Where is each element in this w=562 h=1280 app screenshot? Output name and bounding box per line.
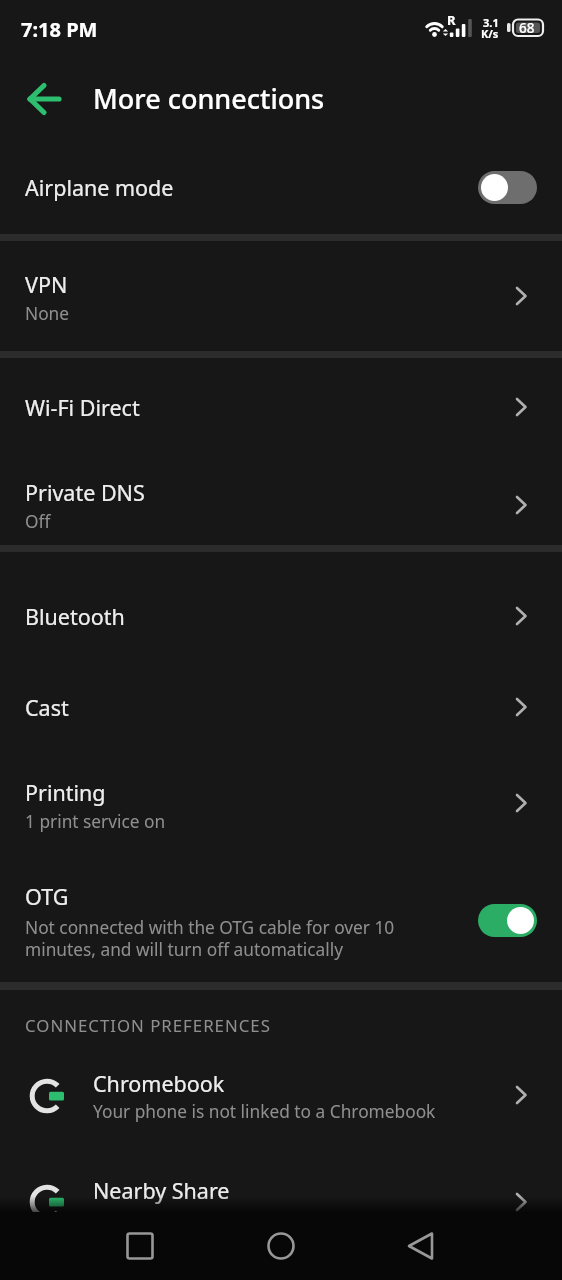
staticText: Your phone is not linked to a Chromebook bbox=[93, 1100, 436, 1124]
button[interactable]: OTG bbox=[0, 862, 562, 972]
staticText: VPN bbox=[25, 270, 68, 299]
button[interactable]: Private DNS bbox=[0, 460, 562, 545]
staticText: Printing bbox=[25, 778, 106, 807]
staticText: Private DNS bbox=[25, 478, 145, 507]
button[interactable]: Bluetooth bbox=[0, 571, 562, 661]
staticText: K/s bbox=[481, 26, 499, 41]
staticText: R bbox=[447, 11, 456, 29]
staticText: Chromebook bbox=[93, 1069, 225, 1098]
button[interactable] bbox=[253, 1212, 309, 1280]
button[interactable] bbox=[478, 904, 537, 937]
button[interactable]: VPN bbox=[0, 251, 562, 341]
staticText: Bluetooth bbox=[25, 602, 125, 631]
staticText: CONNECTION PREFERENCES bbox=[25, 1014, 271, 1037]
button[interactable] bbox=[18, 74, 70, 124]
button[interactable] bbox=[478, 171, 537, 204]
staticText: Nearby Share bbox=[93, 1176, 230, 1205]
staticText: Not connected with the OTG cable for ove… bbox=[25, 916, 395, 940]
staticText: 3.1 bbox=[483, 15, 499, 30]
staticText: 7:18 PM bbox=[21, 16, 98, 43]
button[interactable]: Chromebook bbox=[0, 1048, 562, 1144]
staticText: Airplane mode bbox=[25, 173, 174, 202]
staticText: Wi-Fi Direct bbox=[25, 393, 140, 422]
button[interactable]: Wi-Fi Direct bbox=[0, 362, 562, 452]
button[interactable] bbox=[393, 1212, 449, 1280]
staticText: 68 bbox=[519, 19, 535, 37]
button[interactable]: Airplane mode bbox=[0, 142, 562, 232]
staticText: More connections bbox=[93, 80, 325, 117]
button[interactable]: Printing bbox=[0, 758, 562, 848]
staticText: minutes, and will turn off automatically bbox=[25, 938, 344, 962]
button[interactable]: Cast bbox=[0, 662, 562, 752]
button[interactable]: Nearby Share bbox=[0, 1154, 562, 1212]
staticText: Off bbox=[25, 510, 51, 534]
staticText: None bbox=[25, 302, 70, 326]
staticText: 1 print service on bbox=[25, 810, 166, 834]
button[interactable] bbox=[112, 1212, 168, 1280]
staticText: OTG bbox=[25, 882, 69, 911]
staticText: Cast bbox=[25, 693, 69, 722]
